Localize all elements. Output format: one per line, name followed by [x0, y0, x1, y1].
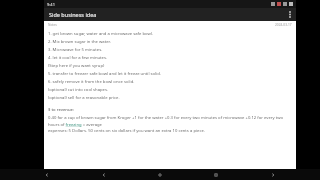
button[interactable]: 2. Mix brown sugar in the water.	[48, 39, 292, 45]
staticText: Side business idea	[49, 11, 97, 18]
button[interactable]: 5. transfer to freezer safe bowl and let…	[48, 71, 292, 77]
button[interactable]: (optional) cut into cool shapes.	[48, 87, 292, 93]
staticText: 2024-03-17	[275, 23, 292, 27]
button[interactable]: 3. Microwave for 5 minutes.	[48, 47, 292, 53]
button[interactable]: Home	[151, 169, 169, 180]
button[interactable]: (Step here if you want syrup)	[48, 63, 292, 69]
button[interactable]: 6. safely remove it from the bowl once s…	[48, 79, 292, 85]
button[interactable]: Recents	[207, 169, 225, 180]
staticText: Notes	[48, 23, 57, 27]
button[interactable]: More options	[284, 8, 296, 21]
button[interactable]: 0.40 for a cup of brown sugar from Kroge…	[48, 115, 292, 127]
staticText: $ to revenue:	[48, 107, 75, 113]
button[interactable]: Checklist	[47, 172, 54, 179]
button[interactable]: Previous	[95, 169, 113, 180]
button[interactable]: 1. get brown sugar, water and a microwav…	[48, 31, 292, 37]
button[interactable]: Forward	[264, 169, 282, 180]
button[interactable]: Back	[38, 169, 56, 180]
button[interactable]: 4. let it cool for a few minutes.	[48, 55, 292, 61]
staticText: expenses: 5 Dollars. 50 cents on six dol…	[48, 128, 292, 134]
button[interactable]: (optional) sell for a reasonable price.	[48, 95, 292, 101]
staticText: 9:41	[47, 2, 55, 7]
